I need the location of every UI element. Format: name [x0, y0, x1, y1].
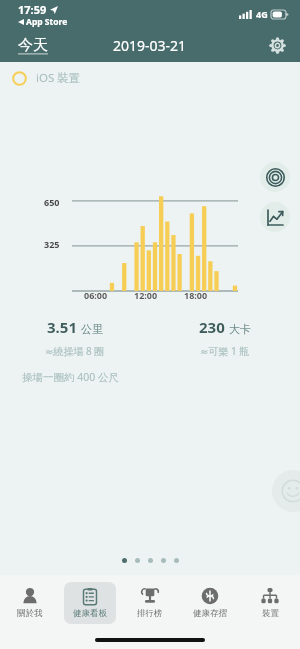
- button[interactable]: 健康存摺: [184, 582, 236, 624]
- staticText: 06:00: [84, 289, 108, 301]
- staticText: 3.51: [47, 317, 77, 337]
- staticText: 公里: [81, 322, 103, 336]
- staticText: 健康存摺: [193, 608, 227, 619]
- staticText: 操場一圈約 400 公尺: [22, 370, 119, 384]
- button[interactable]: 3.51: [0, 317, 150, 358]
- staticText: 關於我: [17, 608, 43, 619]
- button[interactable]: Rings: [260, 162, 290, 192]
- staticText: 325: [44, 238, 60, 250]
- button[interactable]: 230: [150, 317, 300, 358]
- button[interactable]: Feedback: [272, 470, 300, 512]
- button[interactable]: 健康看板: [64, 582, 116, 624]
- staticText: 18:00: [184, 289, 208, 301]
- button[interactable]: 關於我: [8, 582, 52, 624]
- staticText: 230: [199, 317, 225, 337]
- staticText: 2019-03-21: [113, 36, 187, 55]
- button[interactable]: 裝置: [252, 582, 288, 624]
- button[interactable]: Trend chart: [260, 202, 290, 232]
- staticText: 12:00: [134, 289, 158, 301]
- staticText: 排行榜: [137, 608, 163, 619]
- staticText: 4G: [256, 8, 268, 20]
- staticText: 650: [44, 196, 60, 208]
- button[interactable]: 今天: [14, 32, 52, 59]
- staticText: 今天: [18, 36, 48, 55]
- staticText: 裝置: [262, 608, 279, 619]
- button[interactable]: iOS 裝置: [12, 70, 81, 86]
- staticText: ≈繞操場 8 圈: [45, 344, 105, 358]
- staticText: iOS 裝置: [36, 70, 81, 86]
- staticText: 大卡: [229, 322, 251, 336]
- button[interactable]: 排行榜: [128, 582, 172, 624]
- button[interactable]: Settings: [265, 33, 290, 58]
- staticText: 17:59: [18, 2, 47, 17]
- staticText: App Store: [26, 16, 68, 27]
- staticText: 健康看板: [73, 608, 107, 619]
- staticText: ≈可樂 1 瓶: [200, 344, 250, 358]
